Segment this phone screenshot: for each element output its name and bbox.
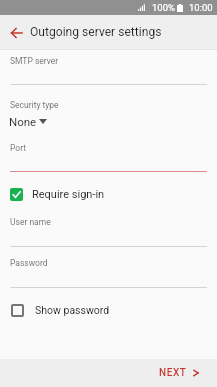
staticText: Port bbox=[10, 143, 27, 153]
staticText: Show password bbox=[35, 304, 110, 316]
button[interactable]: Password bbox=[0, 258, 217, 293]
staticText: User name bbox=[10, 217, 51, 227]
button[interactable]: Port bbox=[0, 143, 217, 178]
staticText: Security type bbox=[10, 100, 59, 110]
staticText: SMTP server bbox=[10, 56, 59, 66]
button[interactable]: SMTP server bbox=[0, 56, 217, 91]
button[interactable]: User name bbox=[0, 217, 217, 252]
button[interactable]: Navigate up bbox=[3, 21, 29, 45]
staticText: None bbox=[9, 115, 37, 128]
staticText: 10:00 bbox=[189, 2, 213, 13]
staticText: NEXT bbox=[159, 367, 187, 379]
button[interactable]: Show password bbox=[0, 298, 217, 322]
button[interactable]: Security type bbox=[0, 99, 217, 135]
staticText: Password bbox=[10, 258, 48, 268]
staticText: 100% bbox=[152, 2, 175, 13]
button[interactable]: NEXT bbox=[145, 362, 217, 384]
button[interactable]: Require sign-in bbox=[0, 182, 217, 206]
staticText: Require sign-in bbox=[32, 188, 105, 201]
staticText: Outgoing server settings bbox=[30, 25, 162, 39]
